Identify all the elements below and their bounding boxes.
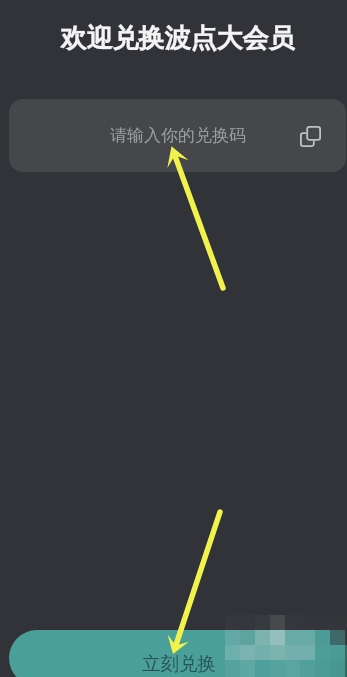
button[interactable]: Paste redeem code <box>295 121 325 151</box>
button[interactable]: 请输入你的兑换码 <box>9 99 346 172</box>
staticText: 立刻兑换 <box>142 652 216 675</box>
staticText: 请输入你的兑换码 <box>110 125 246 146</box>
button[interactable]: 立刻兑换 <box>9 630 346 677</box>
staticText: 欢迎兑换波点大会员 <box>4 22 347 55</box>
